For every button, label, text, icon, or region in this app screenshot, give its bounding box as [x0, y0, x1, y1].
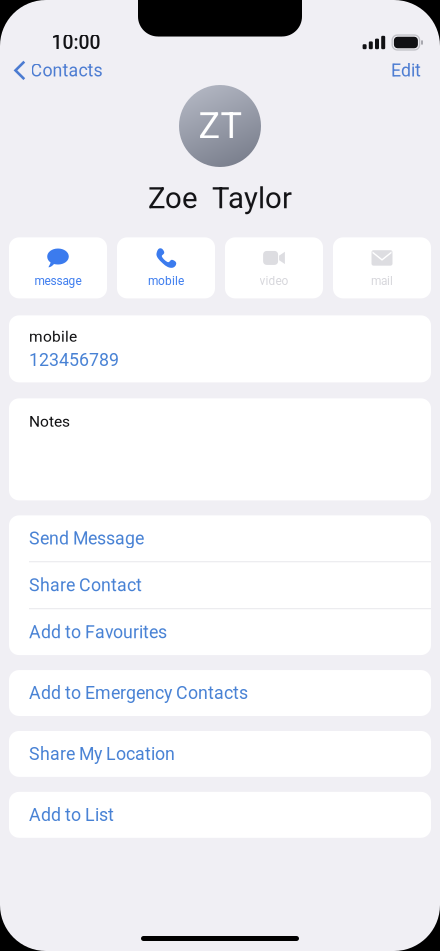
staticText: Contacts — [30, 60, 102, 81]
button[interactable]: Add to Emergency Contacts — [9, 670, 431, 716]
staticText: Notes — [29, 412, 70, 430]
button[interactable]: mobile — [9, 315, 431, 382]
staticText: Edit — [391, 60, 421, 81]
staticText: message — [34, 274, 81, 288]
staticText: mobile — [29, 327, 77, 345]
staticText: Add to List — [29, 804, 114, 825]
button[interactable]: Video call — [225, 237, 323, 298]
button[interactable]: Share Contact — [9, 562, 431, 608]
button[interactable]: Send Message — [9, 515, 431, 561]
staticText: Add to Emergency Contacts — [29, 683, 248, 703]
staticText: video — [259, 274, 288, 288]
staticText: 123456789 — [29, 349, 119, 370]
staticText: Share My Location — [29, 743, 175, 764]
button[interactable]: Share My Location — [9, 731, 431, 777]
button[interactable]: Add to Favourites — [9, 609, 431, 655]
button[interactable]: Call mobile — [117, 237, 215, 298]
staticText: Add to Favourites — [29, 622, 167, 642]
button[interactable]: Contacts — [0, 55, 102, 86]
staticText: Share Contact — [29, 575, 142, 596]
staticText: mobile — [148, 274, 184, 288]
button[interactable]: Send mail — [333, 237, 431, 298]
staticText: Zoe Taylor — [148, 181, 292, 215]
staticText: mail — [371, 274, 393, 288]
button[interactable]: Add to List — [9, 792, 431, 838]
button[interactable]: Send message — [9, 237, 107, 298]
staticText: ZT — [198, 105, 241, 147]
staticText: 10:00 — [51, 31, 100, 54]
staticText: Send Message — [29, 528, 144, 549]
button[interactable]: Edit — [391, 55, 440, 86]
